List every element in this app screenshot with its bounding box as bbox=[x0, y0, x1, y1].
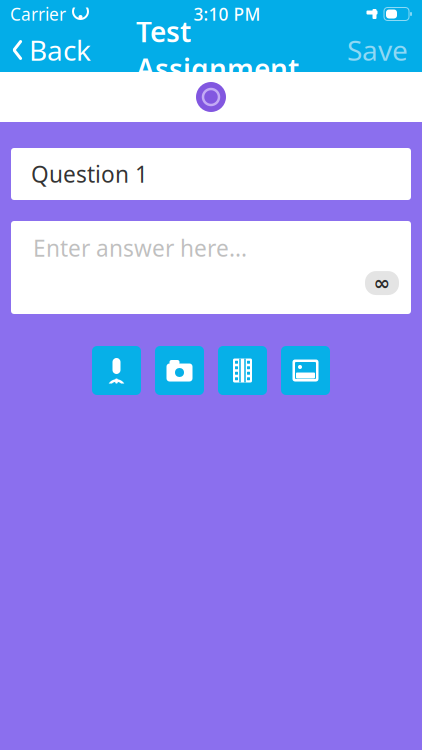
button[interactable]: Record video bbox=[218, 346, 267, 395]
button[interactable]: Back bbox=[0, 28, 102, 72]
button[interactable]: Unlimited characters bbox=[365, 271, 399, 295]
staticText: Enter answer here... bbox=[33, 233, 247, 263]
staticText: Carrier bbox=[10, 2, 66, 25]
button[interactable]: Save bbox=[333, 28, 422, 72]
staticText: ∞ bbox=[373, 272, 390, 294]
button[interactable]: Take photo bbox=[155, 346, 204, 395]
staticText: 3:10 PM bbox=[193, 2, 260, 25]
button[interactable]: Choose image bbox=[281, 346, 330, 395]
button[interactable]: Record audio bbox=[92, 346, 141, 395]
staticText: Back bbox=[29, 31, 91, 69]
staticText: Save bbox=[347, 31, 408, 69]
staticText: Question 1 bbox=[31, 159, 148, 189]
staticText: Test Assignment bbox=[136, 13, 299, 87]
